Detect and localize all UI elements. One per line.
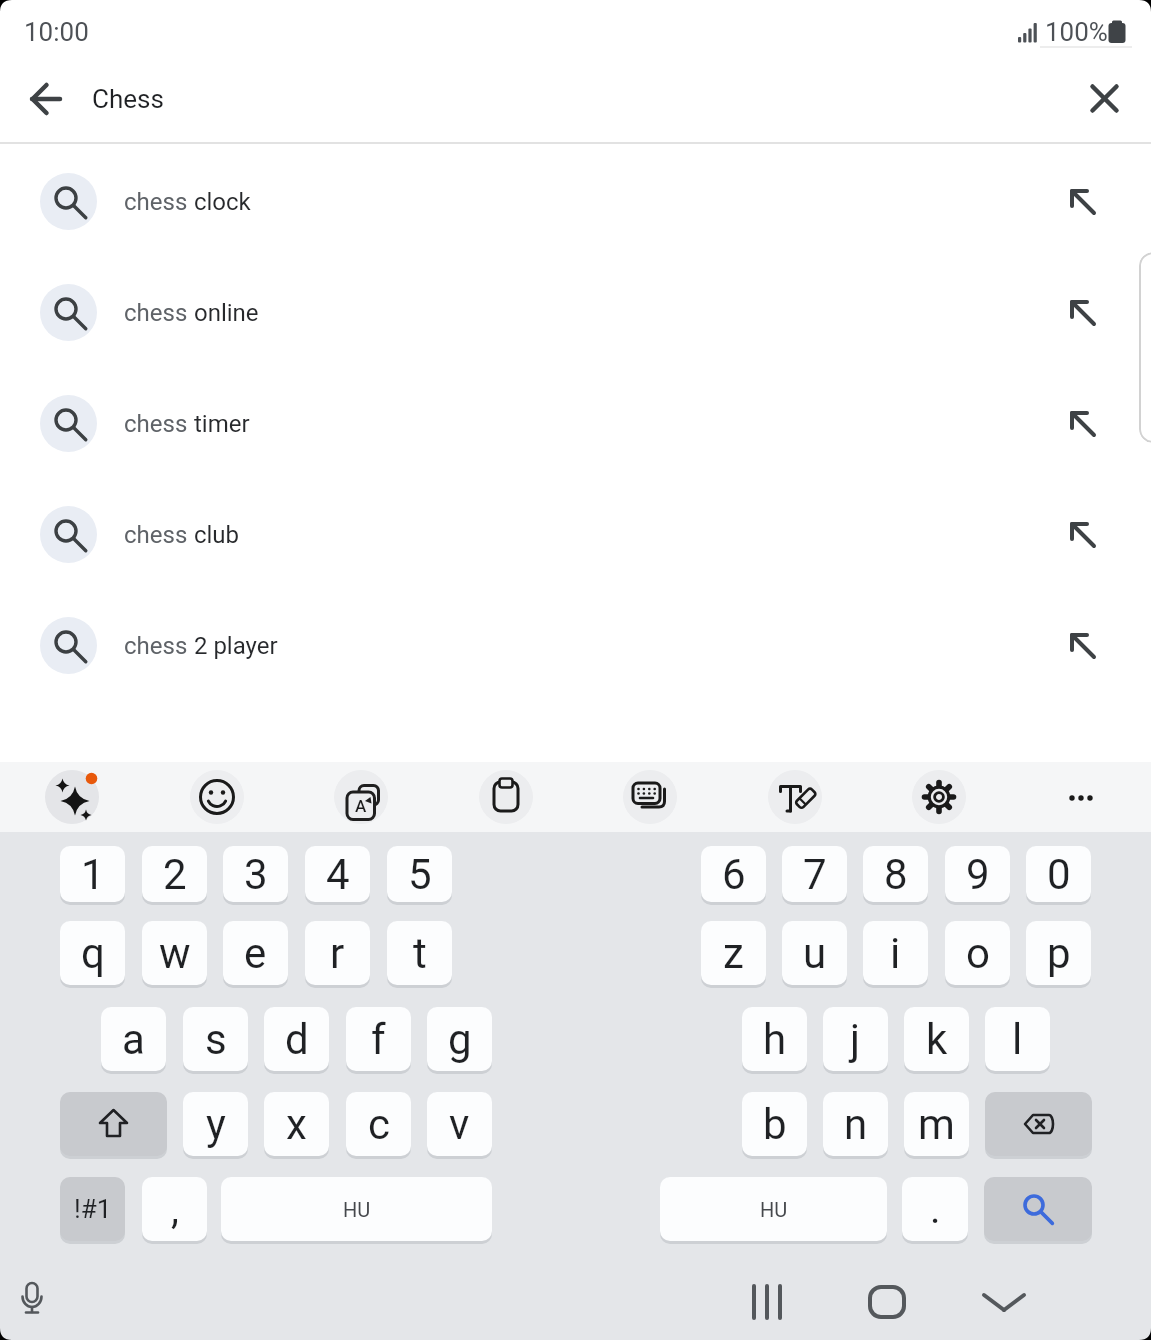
button[interactable]: b xyxy=(742,1092,807,1156)
staticText: u xyxy=(803,929,827,978)
button[interactable]: 5 xyxy=(387,846,452,902)
staticText: k xyxy=(926,1015,948,1064)
staticText: o xyxy=(966,929,990,978)
staticText: 5 xyxy=(408,850,432,899)
button[interactable]: 3 xyxy=(223,846,288,902)
button[interactable] xyxy=(1090,84,1119,113)
button[interactable] xyxy=(45,770,99,824)
button[interactable]: , xyxy=(142,1177,207,1241)
button[interactable]: . xyxy=(902,1177,968,1241)
button[interactable]: q xyxy=(60,921,125,985)
staticText: !#1 xyxy=(74,1194,112,1224)
button[interactable]: z xyxy=(701,921,766,985)
staticText: i xyxy=(890,929,901,978)
button[interactable]: d xyxy=(264,1007,329,1071)
button[interactable]: m xyxy=(904,1092,969,1156)
staticText: w xyxy=(159,929,191,978)
button[interactable] xyxy=(1058,790,1104,806)
button[interactable]: f xyxy=(346,1007,411,1071)
button[interactable]: h xyxy=(742,1007,807,1071)
button[interactable] xyxy=(868,1285,906,1319)
button[interactable]: 9 xyxy=(945,846,1010,902)
staticText: 10:00 xyxy=(24,17,89,47)
button[interactable]: u xyxy=(782,921,847,985)
button[interactable] xyxy=(768,770,822,824)
staticText: a xyxy=(122,1015,145,1064)
staticText: t xyxy=(413,929,427,978)
button[interactable] xyxy=(623,770,677,824)
staticText: club xyxy=(188,521,240,549)
staticText: 8 xyxy=(884,850,908,899)
button[interactable]: r xyxy=(305,921,370,985)
staticText: chess xyxy=(124,188,188,216)
button[interactable] xyxy=(748,1284,786,1320)
button[interactable]: 1 xyxy=(60,846,125,902)
button[interactable]: 4 xyxy=(305,846,370,902)
staticText: v xyxy=(449,1100,470,1149)
button[interactable]: o xyxy=(945,921,1010,985)
staticText: timer xyxy=(188,410,250,438)
button[interactable]: x xyxy=(264,1092,329,1156)
button[interactable] xyxy=(984,1177,1092,1241)
button[interactable]: j xyxy=(823,1007,888,1071)
button[interactable] xyxy=(190,770,244,824)
button[interactable]: i xyxy=(863,921,928,985)
button[interactable]: w xyxy=(142,921,207,985)
staticText: g xyxy=(448,1015,472,1064)
button[interactable]: 0 xyxy=(1026,846,1091,902)
staticText: online xyxy=(188,299,259,327)
staticText: 6 xyxy=(722,850,746,899)
button[interactable]: a xyxy=(101,1007,166,1071)
staticText: h xyxy=(763,1015,787,1064)
button[interactable]: 6 xyxy=(701,846,766,902)
button[interactable]: c xyxy=(346,1092,411,1156)
staticText: HU xyxy=(760,1198,788,1221)
staticText: f xyxy=(371,1015,386,1064)
staticText: HU xyxy=(343,1198,371,1221)
button[interactable] xyxy=(660,1177,887,1241)
staticText: l xyxy=(1012,1015,1023,1064)
button[interactable] xyxy=(221,1177,492,1241)
staticText: e xyxy=(244,929,267,978)
button[interactable] xyxy=(982,1288,1026,1316)
staticText: 2 player xyxy=(188,632,278,660)
staticText: Chess xyxy=(92,84,164,114)
button[interactable] xyxy=(60,1092,167,1156)
button[interactable]: 7 xyxy=(782,846,847,902)
button[interactable]: chess xyxy=(0,590,1151,701)
button[interactable]: e xyxy=(223,921,288,985)
button[interactable]: v xyxy=(427,1092,492,1156)
button[interactable]: l xyxy=(985,1007,1050,1071)
button[interactable]: y xyxy=(183,1092,248,1156)
button[interactable]: 2 xyxy=(142,846,207,902)
staticText: q xyxy=(81,929,105,978)
button[interactable]: p xyxy=(1026,921,1091,985)
staticText: 7 xyxy=(803,850,827,899)
staticText: 4 xyxy=(326,850,350,899)
button[interactable]: 8 xyxy=(863,846,928,902)
button[interactable]: chess xyxy=(0,368,1151,479)
staticText: 0 xyxy=(1047,850,1071,899)
button[interactable]: chess xyxy=(0,479,1151,590)
staticText: . xyxy=(930,1186,941,1233)
button[interactable]: chess xyxy=(0,257,1151,368)
button[interactable]: n xyxy=(823,1092,888,1156)
staticText: r xyxy=(330,929,345,978)
staticText: 1 xyxy=(81,850,105,899)
button[interactable] xyxy=(912,770,966,824)
staticText: p xyxy=(1047,929,1071,978)
button[interactable]: g xyxy=(427,1007,492,1071)
staticText: chess xyxy=(124,299,188,327)
button[interactable] xyxy=(479,770,533,824)
button[interactable]: t xyxy=(387,921,452,985)
button[interactable]: !#1 xyxy=(60,1177,125,1241)
button[interactable]: chess xyxy=(0,146,1151,257)
button[interactable] xyxy=(985,1092,1092,1156)
button[interactable] xyxy=(334,770,388,824)
staticText: 100% xyxy=(1045,17,1108,47)
button[interactable]: s xyxy=(183,1007,248,1071)
staticText: 2 xyxy=(163,850,187,899)
button[interactable]: k xyxy=(904,1007,969,1071)
button[interactable] xyxy=(30,82,64,116)
button[interactable] xyxy=(18,1281,48,1319)
